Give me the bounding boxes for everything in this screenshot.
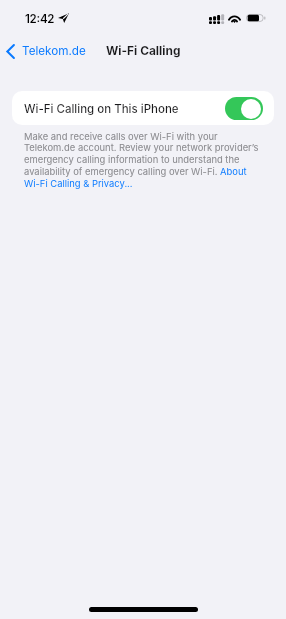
staticText: Wi-Fi Calling bbox=[106, 43, 181, 57]
staticText: Telekom.de bbox=[22, 44, 86, 58]
staticText: Wi-Fi Calling on This iPhone bbox=[24, 102, 179, 116]
button[interactable]: Wi-Fi Calling on This iPhone bbox=[12, 91, 274, 125]
staticText: 12:42 bbox=[25, 12, 55, 26]
staticText: Make and receive calls over Wi-Fi with y… bbox=[24, 131, 261, 190]
button[interactable]: Wi-Fi Calling toggle bbox=[225, 97, 263, 120]
button[interactable]: Telekom.de bbox=[2, 42, 92, 61]
